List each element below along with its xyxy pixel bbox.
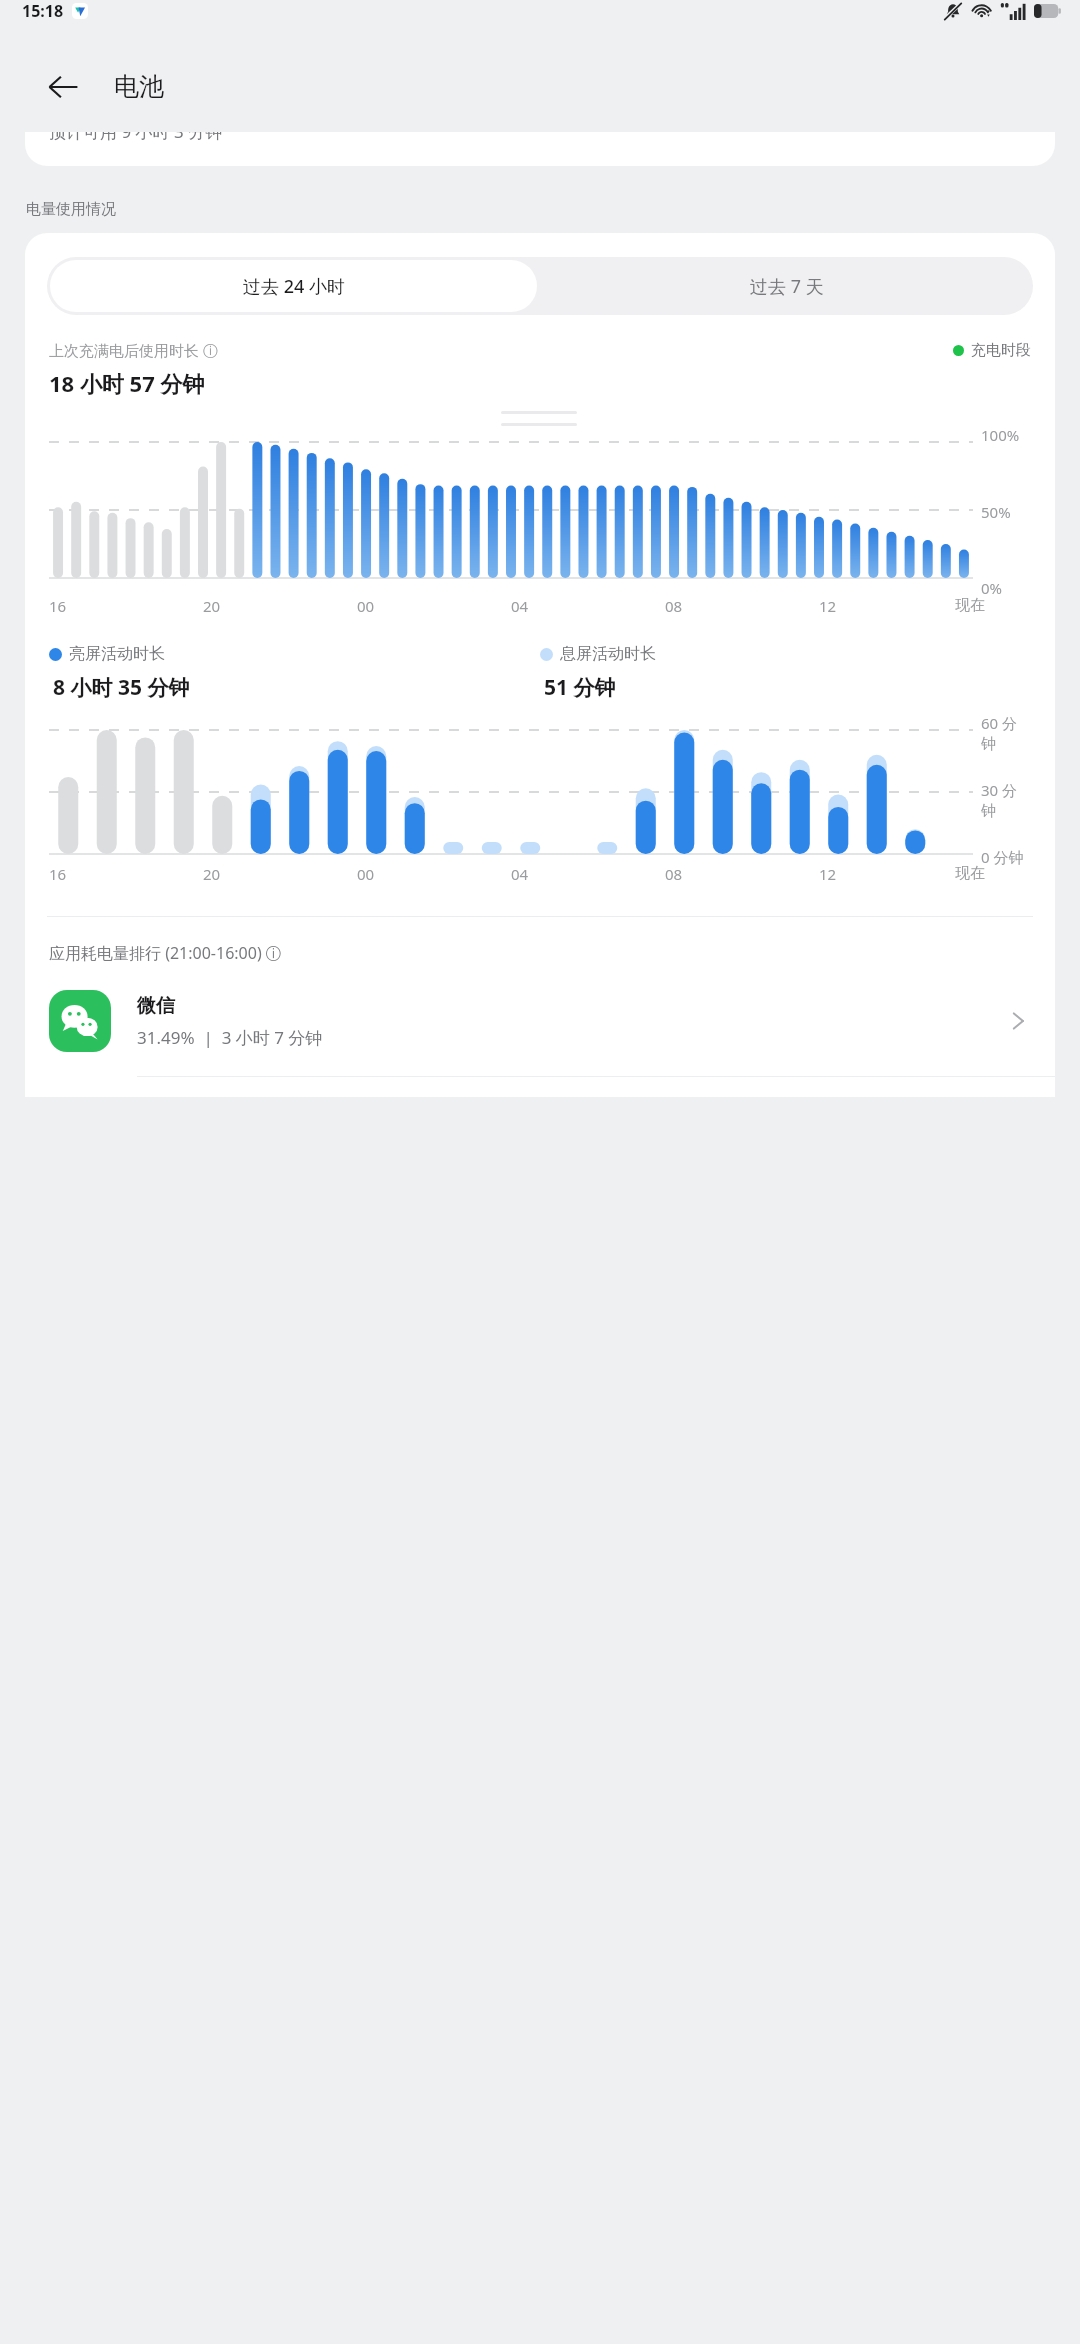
staticText: 息屏活动时长 xyxy=(560,644,656,664)
staticText: 现在 xyxy=(955,596,985,615)
staticText: 电量使用情况 xyxy=(26,200,116,219)
staticText: 15:18 xyxy=(22,0,64,22)
staticText: 20 xyxy=(203,596,221,616)
staticText: 51 分钟 xyxy=(544,673,616,702)
staticText: 00 xyxy=(357,596,375,616)
button[interactable]: 返回 xyxy=(36,60,90,114)
staticText: 上次充满电后使用时长 ⓘ xyxy=(49,340,218,360)
staticText: 过去 24 小时 xyxy=(243,274,345,299)
staticText: 12 xyxy=(819,864,837,884)
staticText: 50% xyxy=(981,502,1011,522)
staticText: 30 分钟 xyxy=(981,780,1031,821)
button[interactable]: 过去 7 天 xyxy=(540,257,1033,315)
staticText: 04 xyxy=(511,864,529,884)
staticText: 04 xyxy=(511,596,529,616)
staticText: 现在 xyxy=(955,864,985,883)
staticText: 20 xyxy=(203,864,221,884)
staticText: 预计可用 9 小时 3 分钟 xyxy=(49,132,223,143)
button[interactable]: 过去 24 小时 xyxy=(50,260,537,312)
button[interactable]: 预计可用 9 小时 3 分钟 xyxy=(25,132,1055,166)
staticText: 60 分钟 xyxy=(981,713,1031,754)
staticText: 过去 7 天 xyxy=(750,274,824,299)
staticText: 0 分钟 xyxy=(981,847,1024,867)
staticText: 00 xyxy=(357,864,375,884)
other: 静音 xyxy=(944,2,962,20)
staticText: 16 xyxy=(49,596,67,616)
staticText: 微信 xyxy=(137,994,175,1018)
staticText: 16 xyxy=(49,864,67,884)
staticText: 18 小时 57 分钟 xyxy=(49,368,205,398)
staticText: 电池 xyxy=(114,71,164,102)
staticText: 8 小时 35 分钟 xyxy=(53,673,190,702)
staticText: 31.49% | 3 小时 7 分钟 xyxy=(137,1026,323,1049)
staticText: 08 xyxy=(665,596,683,616)
staticText: 充电时段 xyxy=(971,341,1031,360)
staticText: 0% xyxy=(981,578,1003,598)
staticText: 亮屏活动时长 xyxy=(69,644,165,664)
staticText: 08 xyxy=(665,864,683,884)
staticText: 12 xyxy=(819,596,837,616)
staticText: 应用耗电量排行 (21:00-16:00) ⓘ xyxy=(49,942,282,964)
staticText: 100% xyxy=(981,425,1020,445)
button[interactable]: 微信 xyxy=(25,986,1055,1056)
